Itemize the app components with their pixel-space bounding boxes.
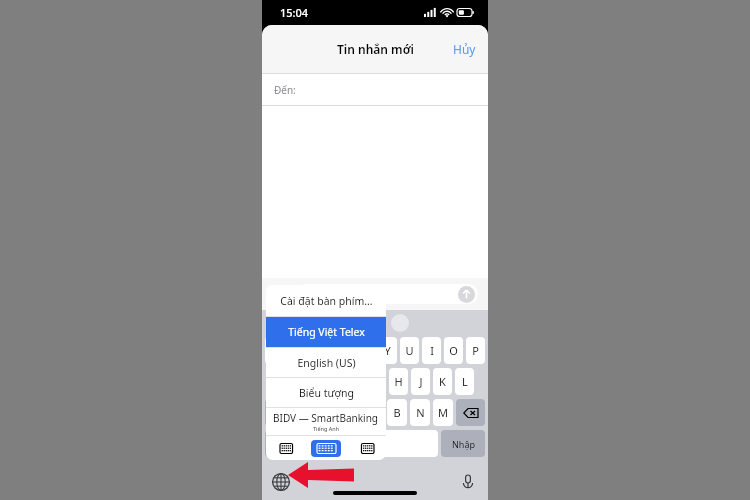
button[interactable]: P bbox=[466, 337, 485, 364]
button[interactable]: Hủy bbox=[441, 33, 488, 65]
button[interactable]: N bbox=[410, 399, 430, 426]
button[interactable]: D bbox=[322, 368, 342, 395]
button[interactable]: U bbox=[400, 337, 419, 364]
button[interactable]: Key bbox=[265, 399, 294, 426]
button[interactable]: T bbox=[356, 337, 375, 364]
button[interactable]: V bbox=[364, 399, 384, 426]
button[interactable]: Đến: bbox=[262, 74, 488, 105]
staticText: BIDV — SmartBanking bbox=[273, 411, 379, 425]
staticText: Cài đặt bàn phím... bbox=[280, 294, 373, 308]
staticText: A bbox=[282, 374, 290, 389]
staticText: 123 bbox=[273, 438, 287, 449]
button[interactable]: cách bbox=[297, 430, 438, 457]
staticText: Đến: bbox=[274, 83, 296, 97]
staticText: U bbox=[405, 343, 414, 358]
button[interactable]: E bbox=[311, 337, 331, 364]
button[interactable]: B bbox=[387, 399, 407, 426]
staticText: O bbox=[449, 343, 458, 358]
staticText: Biểu tượng bbox=[299, 386, 354, 400]
staticText: W bbox=[293, 343, 304, 358]
staticText: J bbox=[419, 374, 423, 389]
button[interactable]: App 0 bbox=[271, 314, 289, 332]
button[interactable]: I bbox=[422, 337, 441, 364]
staticText: X bbox=[325, 405, 332, 420]
staticText: D bbox=[328, 374, 337, 389]
button[interactable]: Nhập bbox=[441, 430, 485, 457]
staticText: G bbox=[372, 374, 381, 389]
staticText: English (US) bbox=[297, 356, 356, 370]
staticText: Z bbox=[303, 405, 310, 420]
button[interactable]: Key bbox=[456, 399, 485, 426]
staticText: M bbox=[438, 405, 448, 420]
staticText: Hủy bbox=[453, 41, 476, 57]
staticText: S bbox=[306, 374, 313, 389]
button[interactable]: App 3 bbox=[343, 314, 361, 332]
button[interactable]: Cài đặt bàn phím... bbox=[266, 285, 386, 316]
button[interactable]: J bbox=[411, 368, 430, 395]
button[interactable]: X bbox=[319, 399, 338, 426]
button[interactable]: Y bbox=[378, 337, 397, 364]
staticText: C bbox=[348, 405, 355, 420]
staticText: Y bbox=[384, 343, 391, 358]
button[interactable]: G bbox=[367, 368, 386, 395]
button[interactable]: Layout 0 bbox=[274, 440, 304, 457]
staticText: T bbox=[362, 343, 369, 358]
staticText: K bbox=[439, 374, 446, 389]
staticText: I bbox=[430, 343, 434, 358]
staticText: Tin nhắn mới bbox=[337, 41, 414, 57]
button[interactable]: Q bbox=[265, 337, 285, 364]
button[interactable]: M bbox=[433, 399, 453, 426]
button[interactable]: Send bbox=[458, 286, 475, 303]
button[interactable]: Layout 1 bbox=[311, 440, 341, 457]
staticText: Tiếng Việt Telex bbox=[288, 325, 365, 339]
button[interactable]: R bbox=[334, 337, 353, 364]
button[interactable]: A bbox=[276, 368, 296, 395]
staticText: F bbox=[352, 374, 358, 389]
staticText: H bbox=[394, 374, 403, 389]
staticText: 15:04 bbox=[280, 5, 309, 20]
button[interactable]: F bbox=[345, 368, 364, 395]
button[interactable]: S bbox=[299, 368, 319, 395]
button[interactable]: O bbox=[444, 337, 463, 364]
button[interactable]: Layout 2 bbox=[349, 440, 379, 457]
button[interactable]: Biểu tượng bbox=[266, 378, 386, 407]
button[interactable]: BIDV — SmartBanking bbox=[266, 408, 386, 435]
button[interactable]: App 2 bbox=[319, 314, 337, 332]
staticText: E bbox=[318, 343, 325, 358]
button[interactable]: App 4 bbox=[367, 314, 385, 332]
button[interactable]: App 5 bbox=[391, 314, 409, 332]
button[interactable]: Z bbox=[297, 399, 316, 426]
button[interactable]: Tiếng Việt Telex bbox=[266, 317, 386, 347]
button[interactable]: App 1 bbox=[295, 314, 313, 332]
button[interactable]: Change keyboard bbox=[272, 473, 290, 491]
button[interactable]: W bbox=[288, 337, 308, 364]
staticText: P bbox=[472, 343, 479, 358]
staticText: Nhập bbox=[452, 438, 475, 450]
staticText: R bbox=[340, 343, 347, 358]
button[interactable]: Dictation bbox=[460, 474, 476, 490]
staticText: N bbox=[416, 405, 425, 420]
button[interactable]: H bbox=[389, 368, 408, 395]
staticText: L bbox=[462, 374, 468, 389]
staticText: cách bbox=[358, 438, 378, 450]
button[interactable]: C bbox=[341, 399, 361, 426]
button[interactable]: K bbox=[433, 368, 452, 395]
staticText: B bbox=[393, 405, 401, 420]
staticText: Q bbox=[271, 343, 280, 358]
button[interactable]: 123 bbox=[265, 430, 294, 457]
button[interactable]: L bbox=[455, 368, 474, 395]
button[interactable]: English (US) bbox=[266, 348, 386, 377]
staticText: V bbox=[371, 405, 378, 420]
button[interactable] bbox=[296, 284, 478, 304]
staticText: Tiếng Anh bbox=[313, 425, 340, 432]
